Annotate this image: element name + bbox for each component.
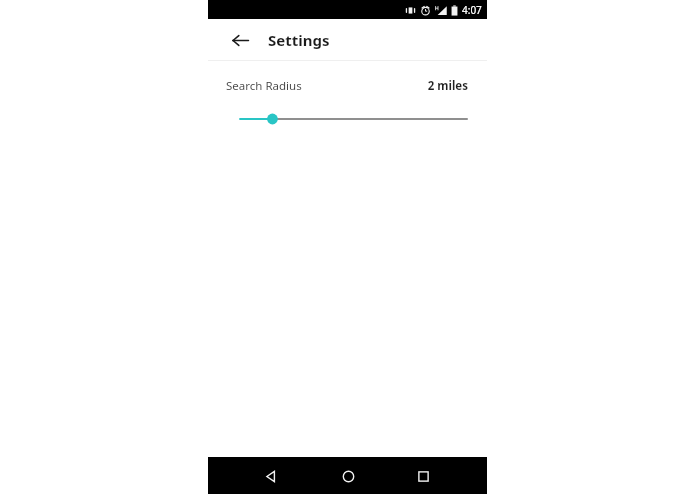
staticText: Search Radius xyxy=(226,78,302,94)
button[interactable]: Home xyxy=(330,458,366,494)
staticText: 4:07 xyxy=(462,3,482,17)
staticText: Settings xyxy=(268,30,330,50)
button[interactable]: Back xyxy=(220,20,260,60)
button[interactable]: Back xyxy=(252,458,288,494)
button[interactable]: Search Radius xyxy=(208,61,487,128)
button[interactable]: Search radius slider xyxy=(226,110,468,128)
staticText: 2 miles xyxy=(427,78,468,94)
button[interactable]: Recent apps xyxy=(405,458,441,494)
